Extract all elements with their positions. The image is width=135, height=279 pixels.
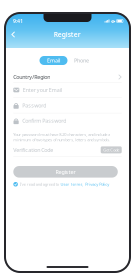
staticText: Register xyxy=(54,30,81,39)
staticText: Register xyxy=(55,168,75,175)
button[interactable]: User Terms, xyxy=(60,182,83,187)
button[interactable]: Back xyxy=(5,29,21,40)
staticText: 9:41 xyxy=(13,17,23,25)
button[interactable]: Register xyxy=(13,166,118,178)
staticText: Country/Region xyxy=(13,73,50,81)
staticText: Enter your Email xyxy=(23,86,62,94)
staticText: Privacy Policy xyxy=(85,182,109,187)
button[interactable]: Phone xyxy=(67,56,95,65)
button[interactable]: Country/Region xyxy=(5,72,130,82)
button[interactable]: Agree to terms xyxy=(13,182,18,187)
button[interactable]: Privacy Policy xyxy=(85,182,109,187)
button[interactable]: Email xyxy=(39,56,67,65)
staticText: Password xyxy=(22,102,46,109)
staticText: Get Code xyxy=(103,147,119,152)
staticText: Email xyxy=(47,57,60,64)
staticText: Verification Code xyxy=(13,146,53,153)
staticText: User Terms, xyxy=(60,182,83,187)
staticText: Your password must have 8-20 characters,… xyxy=(13,132,110,142)
staticText: I've read and agreed to xyxy=(20,182,59,187)
button[interactable]: Get Code xyxy=(101,146,122,153)
staticText: Confirm Password xyxy=(22,117,66,124)
staticText: Phone xyxy=(74,57,89,64)
